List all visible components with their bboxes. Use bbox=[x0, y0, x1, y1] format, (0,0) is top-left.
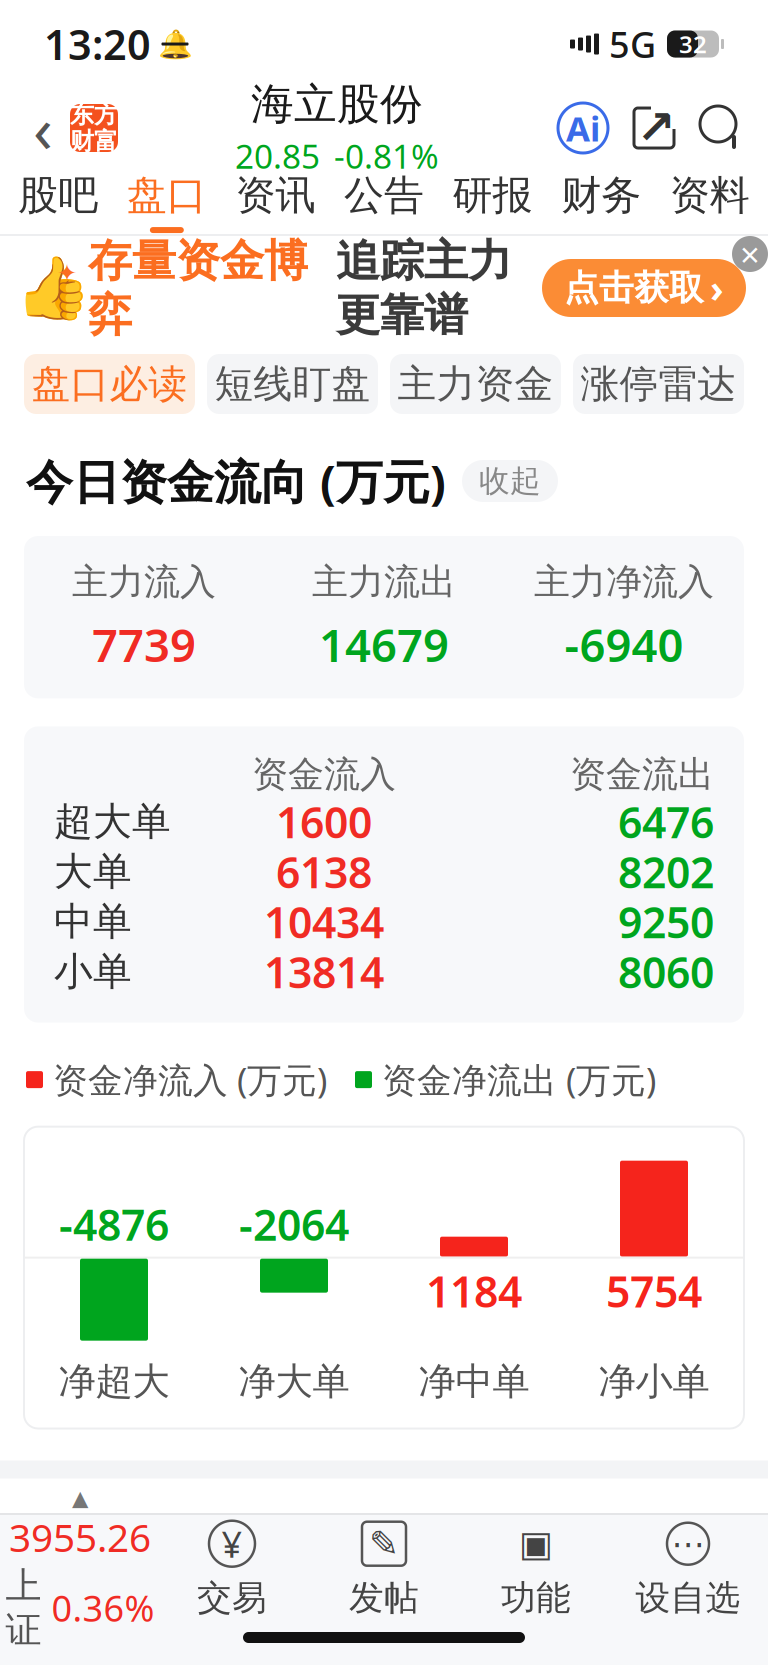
button[interactable]: 收起 bbox=[230, 1520, 326, 1562]
staticText: 🔔 bbox=[157, 28, 192, 60]
staticText: 收起 bbox=[247, 1522, 309, 1560]
staticText: 今日资金流向 (万元) bbox=[26, 450, 446, 512]
staticText: 主力资金 bbox=[397, 360, 553, 408]
staticText: 追踪主力更靠谱 bbox=[336, 234, 512, 342]
staticText: 存量资金博弈 bbox=[88, 234, 308, 342]
staticText: 点击获取 bbox=[564, 267, 704, 309]
staticText: 地域 bbox=[395, 1588, 473, 1635]
staticText: 超大单 bbox=[54, 798, 171, 845]
button[interactable]: ▣ bbox=[460, 1515, 612, 1623]
button[interactable]: 财务 bbox=[547, 168, 655, 236]
staticText: ✦ bbox=[57, 259, 77, 287]
staticText: 3955.26 bbox=[9, 1511, 151, 1562]
staticText: ▲ bbox=[72, 1486, 88, 1510]
button[interactable]: ✎ bbox=[308, 1515, 460, 1623]
button[interactable]: 资料 bbox=[655, 168, 764, 236]
staticText: 5754 bbox=[606, 1263, 702, 1319]
staticText: 32 bbox=[679, 28, 707, 60]
button[interactable]: Share bbox=[630, 104, 678, 152]
button[interactable]: 公告 bbox=[330, 168, 438, 236]
staticText: 短线盯盘 bbox=[214, 360, 370, 408]
staticText: 大单 bbox=[54, 848, 132, 895]
staticText: 5G bbox=[609, 20, 656, 68]
staticText: 资金净流出 (万元) bbox=[382, 1057, 656, 1103]
staticText: 主力流出 bbox=[312, 560, 456, 604]
button[interactable]: 股吧 bbox=[4, 168, 113, 236]
staticText: 中单 bbox=[54, 898, 132, 945]
button[interactable]: 上证 index bbox=[4, 1515, 156, 1623]
staticText: 股吧 bbox=[18, 171, 98, 220]
staticText: 东方 bbox=[70, 100, 118, 129]
button[interactable]: 研报 bbox=[438, 168, 547, 236]
staticText: -4876 bbox=[59, 1196, 169, 1253]
staticText: ▣ bbox=[519, 1523, 553, 1564]
staticText: 主力流入 bbox=[72, 560, 216, 604]
staticText: 1184 bbox=[426, 1263, 522, 1319]
button[interactable]: Search bbox=[698, 104, 746, 152]
staticText: 7739 bbox=[92, 614, 196, 674]
staticText: 资料 bbox=[670, 171, 750, 220]
staticText: 研报 bbox=[453, 171, 533, 220]
staticText: 13814 bbox=[264, 943, 384, 1000]
button[interactable]: Close ad bbox=[732, 236, 768, 272]
button[interactable]: 短线盯盘 bbox=[207, 354, 378, 414]
staticText: 资金流入 bbox=[252, 752, 396, 797]
staticText: 8060 bbox=[618, 943, 714, 1000]
button[interactable]: 👍 bbox=[0, 236, 768, 340]
staticText: -0.81% bbox=[334, 134, 439, 178]
staticText: 上证 bbox=[5, 1564, 41, 1652]
staticText: -2064 bbox=[239, 1196, 349, 1253]
staticText: ⋯ bbox=[671, 1525, 704, 1563]
staticText: × bbox=[740, 231, 760, 277]
staticText: 财富 bbox=[70, 126, 118, 156]
staticText: 10434 bbox=[264, 893, 384, 950]
staticText: 交易 bbox=[197, 1577, 267, 1619]
button[interactable]: AI assistant bbox=[556, 101, 610, 155]
staticText: ↗ bbox=[636, 100, 675, 153]
staticText: ✎ bbox=[369, 1523, 399, 1564]
button[interactable]: 置顶 bbox=[648, 1518, 742, 1564]
staticText: ‹ bbox=[33, 85, 53, 170]
staticText: Ai bbox=[566, 105, 600, 151]
button[interactable]: Back bbox=[22, 101, 64, 155]
staticText: 13:20 bbox=[44, 17, 151, 71]
staticText: 1600 bbox=[276, 793, 372, 850]
staticText: 净小单 bbox=[598, 1359, 709, 1404]
staticText: 资金流出 bbox=[570, 752, 714, 797]
staticText: 20.85 bbox=[235, 134, 320, 178]
button[interactable]: 收起 bbox=[462, 460, 558, 502]
staticText: 盘口必读 bbox=[31, 360, 187, 408]
staticText: 14679 bbox=[319, 614, 449, 674]
staticText: 小单 bbox=[54, 948, 132, 995]
staticText: 涨停雷达 bbox=[580, 360, 736, 408]
staticText: 财务 bbox=[561, 171, 641, 220]
staticText: 净中单 bbox=[418, 1359, 529, 1404]
button[interactable]: 东方财富 home bbox=[64, 104, 118, 152]
staticText: 主力净流入 bbox=[534, 560, 714, 604]
button[interactable]: 主力资金 bbox=[390, 354, 561, 414]
staticText: 发帖 bbox=[349, 1577, 419, 1619]
staticText: 行业 bbox=[26, 1588, 104, 1635]
button[interactable]: 盘口 bbox=[113, 168, 221, 236]
staticText: 资金净流入 (万元) bbox=[53, 1057, 327, 1103]
button[interactable]: ¥ bbox=[156, 1515, 308, 1623]
button[interactable]: 涨停雷达 bbox=[573, 354, 744, 414]
staticText: 资讯 bbox=[235, 171, 315, 220]
staticText: 公告 bbox=[344, 171, 424, 220]
staticText: 👍 bbox=[15, 253, 91, 323]
staticText: 净大单 bbox=[238, 1359, 349, 1404]
staticText: 功能 bbox=[501, 1577, 571, 1619]
staticText: 盘口 bbox=[127, 171, 207, 220]
button[interactable]: ⋯ bbox=[612, 1515, 764, 1623]
staticText: 6138 bbox=[276, 843, 372, 900]
button[interactable]: 盘口必读 bbox=[24, 354, 195, 414]
staticText: 6476 bbox=[618, 793, 714, 850]
staticText: ¥ bbox=[221, 1520, 242, 1568]
staticText: 9250 bbox=[618, 893, 714, 950]
staticText: 8202 bbox=[618, 843, 714, 900]
staticText: 净超大 bbox=[58, 1359, 169, 1404]
button[interactable]: 资讯 bbox=[221, 168, 330, 236]
